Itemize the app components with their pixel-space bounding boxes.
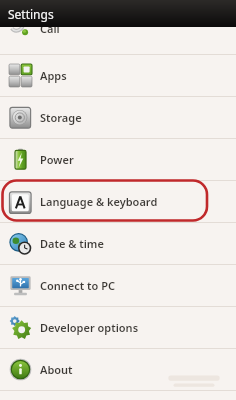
button[interactable]: Apps [0,55,236,96]
button[interactable]: Call [0,27,236,55]
button[interactable]: About [0,349,236,390]
staticText: Apps [40,68,67,83]
staticText: Language & keyboard [40,194,158,209]
button[interactable]: Developer options [0,307,236,348]
button[interactable]: Power [0,139,236,180]
staticText: About [40,362,73,377]
staticText: Power [40,152,74,167]
button[interactable]: Storage [0,97,236,138]
staticText: Settings [8,6,54,22]
staticText: Developer options [40,320,139,335]
button[interactable]: Connect to PC [0,265,236,306]
staticText: Connect to PC [40,278,116,293]
button[interactable]: Language & keyboard [0,181,236,222]
staticText: Date & time [40,236,104,251]
staticText: Storage [40,110,82,125]
staticText: Call [40,27,60,36]
button[interactable]: Date & time [0,223,236,264]
